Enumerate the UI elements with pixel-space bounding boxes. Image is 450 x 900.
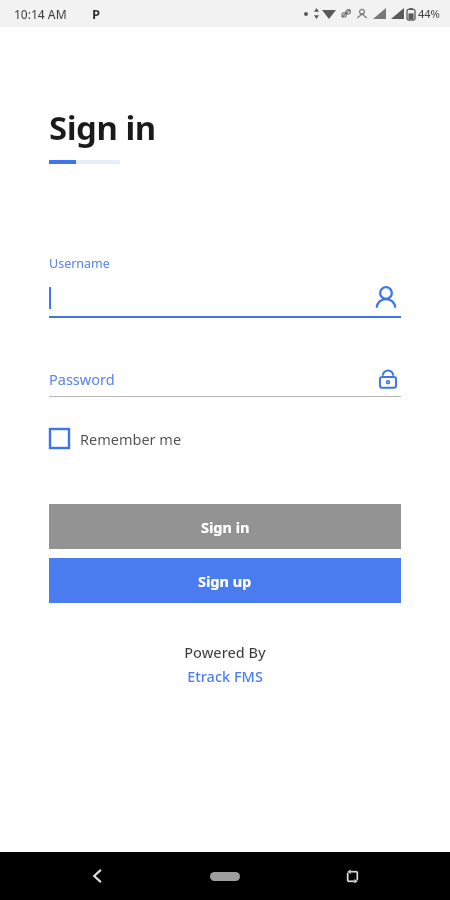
button[interactable]: Back	[78, 856, 118, 896]
staticText: Username	[49, 255, 110, 272]
staticText: Remember me	[80, 429, 182, 449]
button[interactable]: Username	[49, 255, 401, 318]
button[interactable]: Password	[49, 362, 401, 397]
staticText: Etrack FMS	[187, 666, 263, 686]
other: Password	[375, 366, 401, 392]
staticText: Sign up	[198, 571, 252, 591]
button[interactable]: Sign up	[49, 558, 401, 603]
other: Username	[371, 284, 401, 314]
staticText: Powered By	[184, 642, 266, 662]
button[interactable]: Sign in	[49, 504, 401, 549]
button[interactable]: Home	[198, 861, 252, 891]
staticText: 10:14 AM	[14, 6, 67, 22]
button[interactable]: Etrack FMS	[187, 666, 263, 686]
staticText: Sign in	[49, 105, 156, 150]
staticText: 44%	[418, 6, 440, 21]
staticText: Sign in	[201, 517, 250, 537]
staticText: P	[92, 5, 101, 23]
staticText: Password	[49, 369, 115, 389]
button[interactable]: Remember me	[49, 426, 190, 451]
button[interactable]: Rotate screen	[332, 856, 372, 896]
